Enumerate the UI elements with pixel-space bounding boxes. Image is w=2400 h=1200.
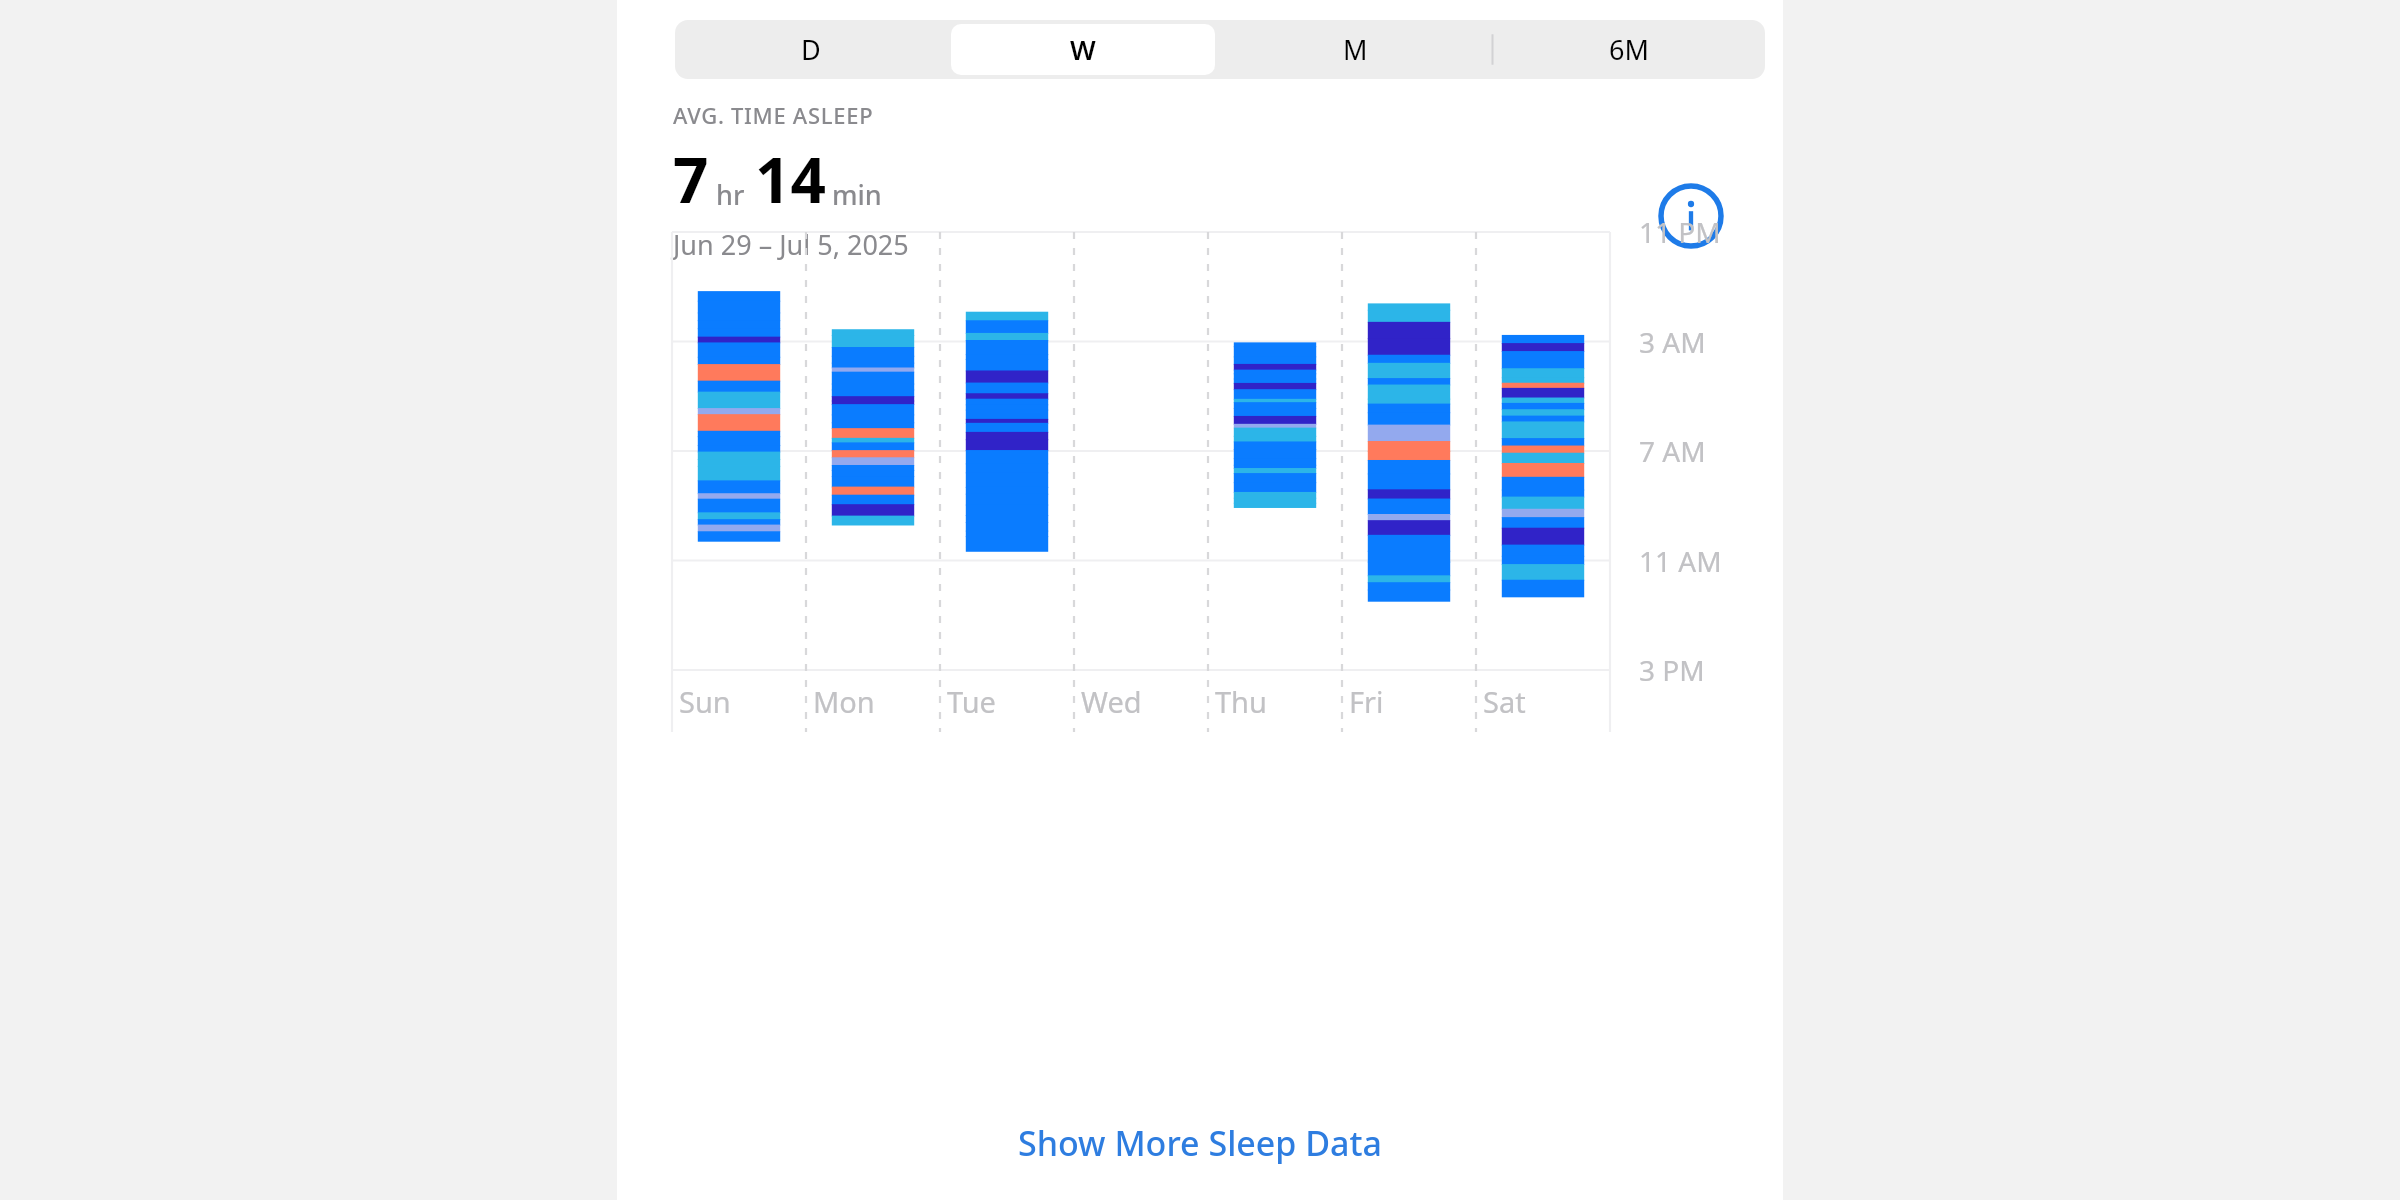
staticText: 3 PM [1639, 651, 1705, 689]
button[interactable]: W [951, 24, 1215, 75]
button[interactable]: D [679, 24, 943, 75]
staticText: min [832, 176, 882, 213]
staticText: Mon [813, 682, 875, 721]
staticText: D [801, 31, 821, 68]
button[interactable]: 6M [1496, 24, 1761, 75]
staticText: Jun 29 – Jul 5, 2025 [673, 226, 909, 263]
staticText: 7 [673, 137, 709, 221]
staticText: 6M [1609, 31, 1649, 68]
staticText: Fri [1349, 682, 1384, 721]
staticText: Thu [1215, 682, 1267, 721]
staticText: hr [716, 176, 745, 213]
staticText: 3 AM [1639, 323, 1706, 361]
button[interactable]: More information [1655, 180, 1727, 252]
staticText: Tue [947, 682, 996, 721]
button[interactable]: Show More Sleep Data [617, 1120, 1783, 1200]
staticText: Wed [1081, 682, 1142, 721]
staticText: Sun [679, 682, 731, 721]
staticText: W [1070, 31, 1096, 68]
staticText: Sat [1483, 682, 1526, 721]
staticText: Show More Sleep Data [1018, 1120, 1383, 1166]
staticText: 11 PM [1639, 213, 1721, 251]
staticText: AVG. TIME ASLEEP [673, 100, 874, 130]
staticText: 11 AM [1639, 542, 1722, 580]
staticText: M [1343, 31, 1368, 68]
staticText: 7 AM [1639, 432, 1706, 470]
button[interactable]: M [1223, 24, 1488, 75]
staticText: 14 [755, 137, 826, 221]
